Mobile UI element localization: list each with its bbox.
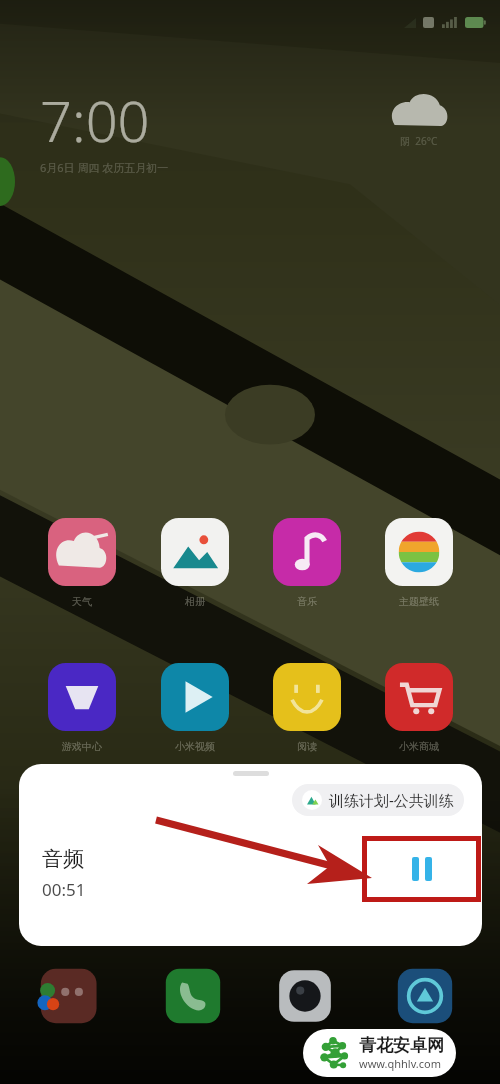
- staticText: 00:51: [42, 878, 86, 901]
- button[interactable]: 音乐播放: [391, 962, 459, 1030]
- button[interactable]: 暂停: [362, 836, 481, 902]
- button[interactable]: 相机: [271, 962, 339, 1030]
- button[interactable]: 电话: [159, 962, 227, 1030]
- staticText: 音乐: [297, 595, 317, 608]
- staticText: 相册: [185, 595, 205, 608]
- button[interactable]: 小米视频: [150, 663, 240, 753]
- staticText: 主题壁纸: [399, 595, 439, 608]
- staticText: 天气: [72, 595, 92, 608]
- button[interactable]: 主题壁纸: [374, 518, 464, 608]
- staticText: 训练计划-公共训练: [329, 790, 454, 810]
- staticText: 小米视频: [175, 740, 215, 753]
- staticText: 游戏中心: [62, 740, 102, 753]
- button[interactable]: 训练计划-公共训练: [292, 784, 464, 816]
- button[interactable]: 智能助理: [34, 962, 102, 1030]
- staticText: 阴 26°C: [400, 134, 438, 148]
- staticText: 音频: [42, 846, 84, 872]
- button[interactable]: 天气: [37, 518, 127, 608]
- staticText: 小米商城: [399, 740, 439, 753]
- button[interactable]: 相册: [150, 518, 240, 608]
- staticText: www.qhhlv.com: [359, 1056, 441, 1071]
- staticText: 青花安卓网: [359, 1035, 444, 1056]
- staticText: 阅读: [297, 740, 317, 753]
- button[interactable]: 小米商城: [374, 663, 464, 753]
- button[interactable]: 音乐: [262, 518, 352, 608]
- button[interactable]: 阅读: [262, 663, 352, 753]
- staticText: 6月6日 周四 农历五月初一: [40, 160, 169, 175]
- button[interactable]: 游戏中心: [37, 663, 127, 753]
- staticText: 7:00: [40, 82, 150, 158]
